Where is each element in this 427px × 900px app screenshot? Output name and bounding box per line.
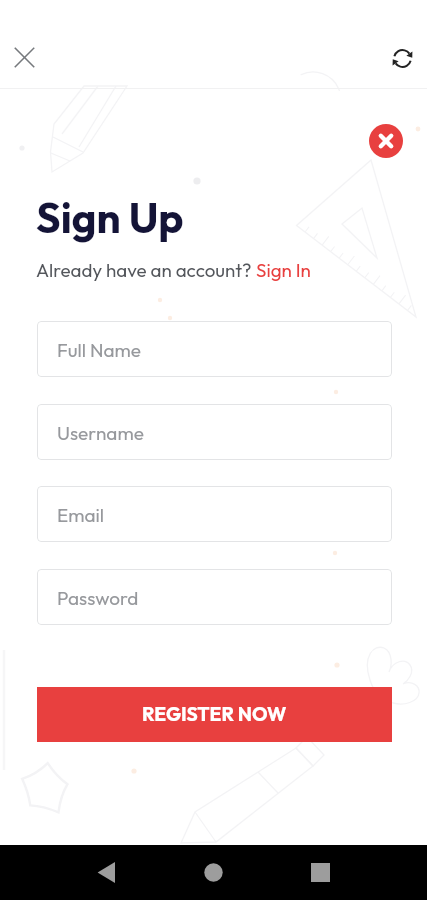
button[interactable]: Back [87,852,128,893]
staticText: Already have an account? [36,258,256,282]
staticText: REGISTER NOW [142,702,287,726]
staticText: Full Name [57,338,141,362]
staticText: Password [57,586,139,610]
button[interactable]: Username [37,404,392,460]
button[interactable]: Password [37,569,392,625]
button[interactable]: Sign In [256,258,311,282]
button[interactable]: Home [193,852,234,893]
button[interactable]: Recent apps [300,852,341,893]
button[interactable]: Refresh [388,44,417,73]
staticText: Username [57,421,144,445]
button[interactable]: Full Name [37,321,392,377]
staticText: Sign Up [36,191,184,244]
button[interactable]: Email [37,486,392,542]
staticText: Sign In [256,258,311,282]
button[interactable]: REGISTER NOW [37,687,392,742]
button[interactable]: Close [10,43,39,72]
staticText: Email [57,503,104,527]
button[interactable]: Dismiss [369,124,403,158]
